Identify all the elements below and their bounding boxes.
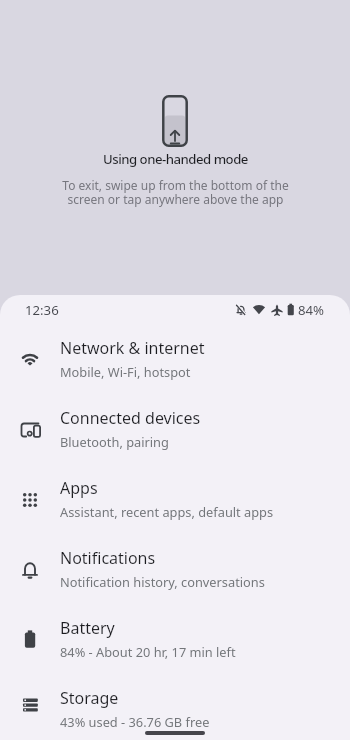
- button[interactable]: Storage: [0, 680, 350, 740]
- staticText: 43% used - 36.76 GB free: [60, 713, 210, 730]
- button[interactable]: Network & internet: [0, 330, 350, 400]
- staticText: Storage: [60, 687, 119, 709]
- staticText: Connected devices: [60, 407, 201, 429]
- staticText: Network & internet: [60, 337, 205, 359]
- button[interactable]: Connected devices: [0, 400, 350, 470]
- staticText: Apps: [60, 477, 98, 499]
- staticText: 84%: [298, 301, 325, 319]
- staticText: Battery: [60, 617, 115, 639]
- button[interactable]: Battery: [0, 610, 350, 680]
- staticText: Mobile, Wi-Fi, hotspot: [60, 363, 191, 380]
- staticText: Bluetooth, pairing: [60, 433, 169, 450]
- staticText: To exit, swipe up from the bottom of the…: [62, 177, 289, 208]
- staticText: 12:36: [25, 301, 59, 319]
- staticText: Using one-handed mode: [103, 150, 248, 168]
- staticText: Notifications: [60, 547, 156, 569]
- staticText: Assistant, recent apps, default apps: [60, 503, 274, 520]
- button[interactable]: Apps: [0, 470, 350, 540]
- staticText: 84% - About 20 hr, 17 min left: [60, 643, 236, 660]
- button[interactable]: Notifications: [0, 540, 350, 610]
- staticText: Notification history, conversations: [60, 573, 265, 590]
